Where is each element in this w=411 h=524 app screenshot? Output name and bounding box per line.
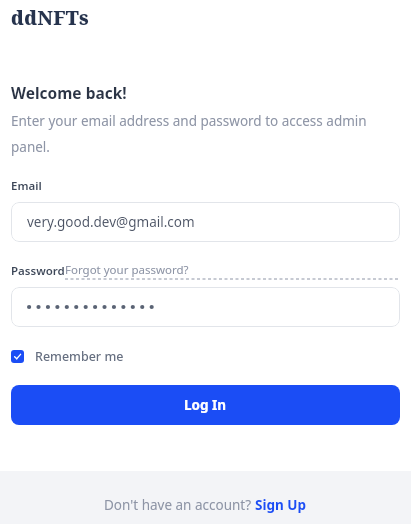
staticText: Log In: [184, 396, 227, 414]
staticText: Forgot your password?: [65, 262, 189, 278]
button[interactable]: Sign Up: [255, 496, 307, 514]
button[interactable]: ddNFTs: [11, 5, 90, 27]
staticText: ddNFTs: [11, 5, 90, 27]
staticText: Password: [11, 263, 65, 279]
button[interactable]: Remember me: [11, 348, 124, 365]
button[interactable]: very.good.dev@gmail.com: [11, 202, 400, 242]
staticText: Email: [11, 178, 42, 194]
button[interactable]: Log In: [11, 385, 400, 425]
staticText: Don't have an account?: [104, 496, 255, 514]
staticText: Welcome back!: [11, 82, 127, 103]
button[interactable]: Forgot your password?: [65, 262, 400, 280]
staticText: very.good.dev@gmail.com: [27, 213, 195, 231]
staticText: Remember me: [35, 348, 124, 365]
staticText: Sign Up: [255, 496, 307, 514]
button[interactable]: [11, 287, 400, 327]
staticText: Enter your email address and password to…: [11, 112, 400, 156]
